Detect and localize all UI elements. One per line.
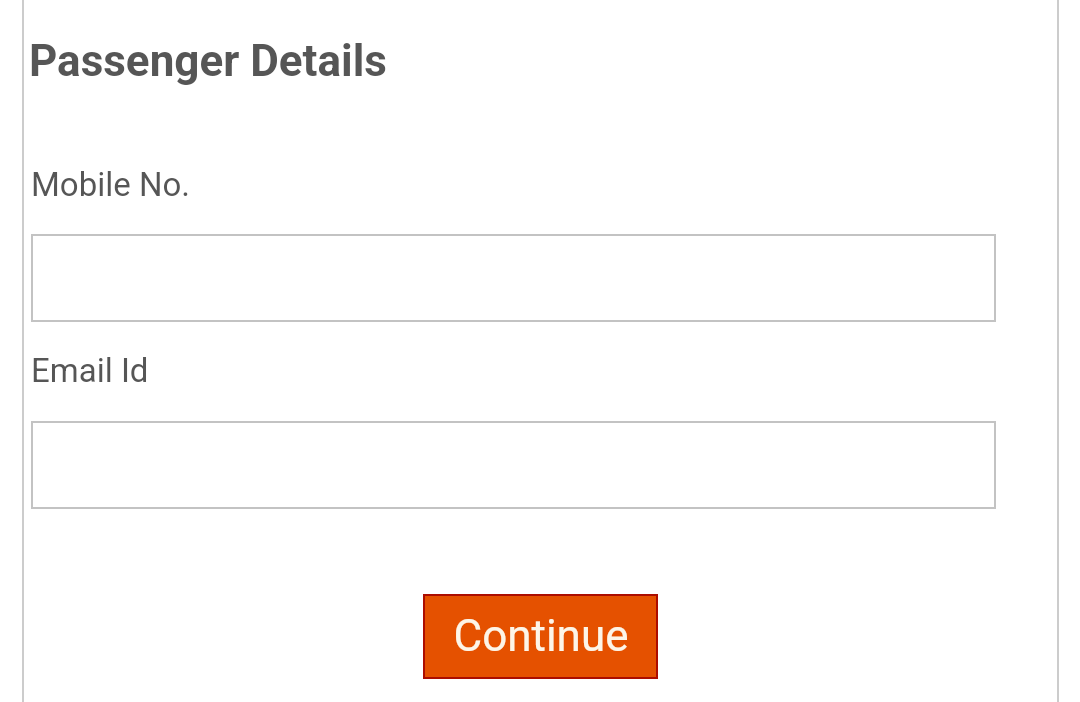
staticText: Mobile No. — [31, 165, 190, 204]
button[interactable] — [31, 234, 996, 322]
button[interactable] — [31, 421, 996, 509]
staticText: Email Id — [31, 351, 149, 390]
button[interactable]: Continue — [425, 596, 656, 677]
staticText: Passenger Details — [29, 35, 387, 87]
staticText: Continue — [453, 610, 629, 662]
